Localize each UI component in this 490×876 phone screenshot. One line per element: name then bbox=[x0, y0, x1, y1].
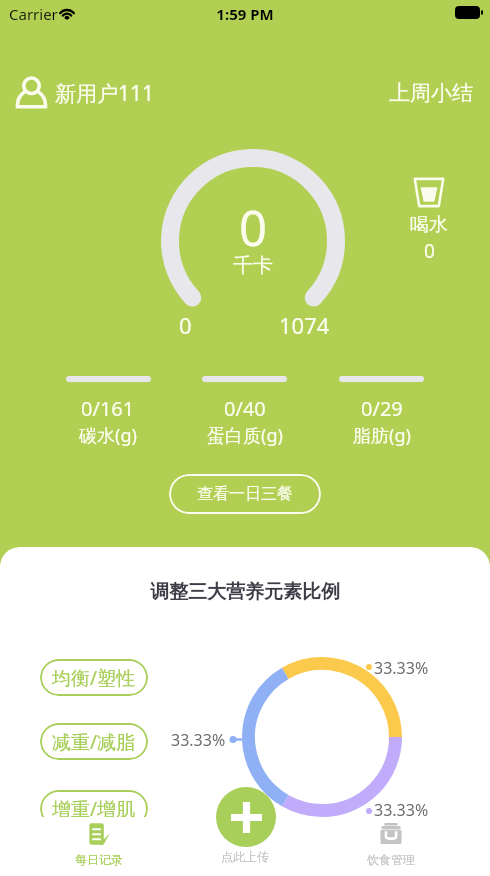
staticText: 33.33% bbox=[171, 729, 226, 751]
staticText: 均衡/塑性 bbox=[52, 665, 136, 691]
staticText: 0/29 bbox=[361, 395, 403, 422]
staticText: 脂肪(g) bbox=[353, 423, 411, 448]
staticText: 0 bbox=[179, 310, 192, 340]
staticText: 上周小结 bbox=[389, 80, 473, 106]
staticText: Carrier bbox=[9, 4, 58, 24]
staticText: 1074 bbox=[279, 310, 330, 340]
button[interactable]: 查看一日三餐 bbox=[169, 474, 321, 514]
staticText: 0 bbox=[424, 238, 435, 264]
staticText: 点此上传 bbox=[205, 849, 285, 864]
staticText: 0/40 bbox=[224, 395, 266, 422]
staticText: 饮食管理 bbox=[351, 852, 431, 867]
staticText: 33.33% bbox=[374, 799, 429, 821]
button[interactable]: 上周小结 bbox=[389, 80, 473, 106]
staticText: 每日记录 bbox=[59, 852, 139, 867]
staticText: 0 bbox=[239, 194, 268, 261]
staticText: 1:59 PM bbox=[0, 4, 490, 24]
button[interactable]: 饮食管理 bbox=[351, 822, 431, 867]
button[interactable]: Add bbox=[216, 787, 276, 847]
staticText: 千卡 bbox=[233, 253, 273, 278]
button[interactable]: 均衡/塑性 bbox=[40, 659, 148, 696]
staticText: 33.33% bbox=[374, 657, 429, 679]
staticText: 减重/减脂 bbox=[52, 729, 136, 755]
button[interactable]: 喝水 bbox=[398, 172, 460, 269]
button[interactable]: 增重/增肌 bbox=[40, 790, 148, 827]
staticText: 调整三大营养元素比例 bbox=[0, 580, 490, 604]
staticText: 碳水(g) bbox=[79, 423, 137, 448]
staticText: 0/161 bbox=[81, 395, 135, 422]
staticText: 喝水 bbox=[410, 213, 448, 237]
staticText: 查看一日三餐 bbox=[197, 484, 293, 504]
button[interactable]: 点此上传 bbox=[205, 849, 285, 864]
button[interactable]: Profile bbox=[11, 73, 51, 113]
staticText: 蛋白质(g) bbox=[207, 423, 283, 448]
staticText: 新用户111 bbox=[55, 79, 155, 108]
button[interactable]: 每日记录 bbox=[59, 822, 139, 867]
button[interactable]: 减重/减脂 bbox=[40, 723, 148, 760]
staticText: 增重/增肌 bbox=[52, 796, 136, 822]
